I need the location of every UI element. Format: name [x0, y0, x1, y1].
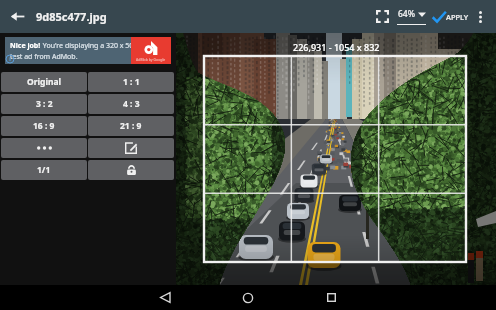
- staticText: APPLY: [446, 12, 469, 22]
- button[interactable]: 21 : 9: [88, 116, 174, 136]
- button[interactable]: 3 : 2: [1, 94, 87, 114]
- button[interactable]: 64%: [396, 4, 427, 29]
- staticText: 3 : 2: [36, 98, 53, 110]
- button[interactable]: Original: [1, 72, 87, 92]
- button[interactable]: Back: [0, 0, 34, 33]
- staticText: Nice job!: [10, 41, 41, 51]
- staticText: 1/1: [37, 164, 51, 176]
- button[interactable]: More options: [472, 0, 488, 33]
- button[interactable]: [1, 138, 87, 158]
- button[interactable]: [88, 160, 174, 180]
- staticText: Original: [27, 76, 62, 88]
- staticText: 1 : 1: [123, 76, 140, 88]
- button[interactable]: 16 : 9: [1, 116, 87, 136]
- button[interactable]: 1 : 1: [88, 72, 174, 92]
- staticText: AdMob by Google: [136, 57, 166, 62]
- staticText: 16 : 9: [33, 120, 55, 132]
- staticText: 64%: [398, 8, 415, 20]
- staticText: 21 : 9: [120, 120, 142, 132]
- button[interactable]: Back: [144, 285, 186, 310]
- button[interactable]: Nice job!: [5, 37, 171, 64]
- button[interactable]: 1/1: [1, 160, 87, 180]
- staticText: 4 : 3: [123, 98, 140, 110]
- button[interactable]: Fit to screen: [372, 0, 392, 33]
- button[interactable]: 4 : 3: [88, 94, 174, 114]
- button[interactable]: Recent apps: [310, 285, 352, 310]
- staticText: test ad from AdMob.: [10, 52, 78, 62]
- staticText: You're displaying a 320 x 50: [41, 41, 134, 51]
- button[interactable]: APPLY: [432, 5, 469, 29]
- button[interactable]: Home: [227, 285, 269, 310]
- staticText: 9d85c477.jpg: [36, 9, 107, 24]
- button[interactable]: [88, 138, 174, 158]
- staticText: 226,931 - 1054 x 832: [293, 41, 380, 53]
